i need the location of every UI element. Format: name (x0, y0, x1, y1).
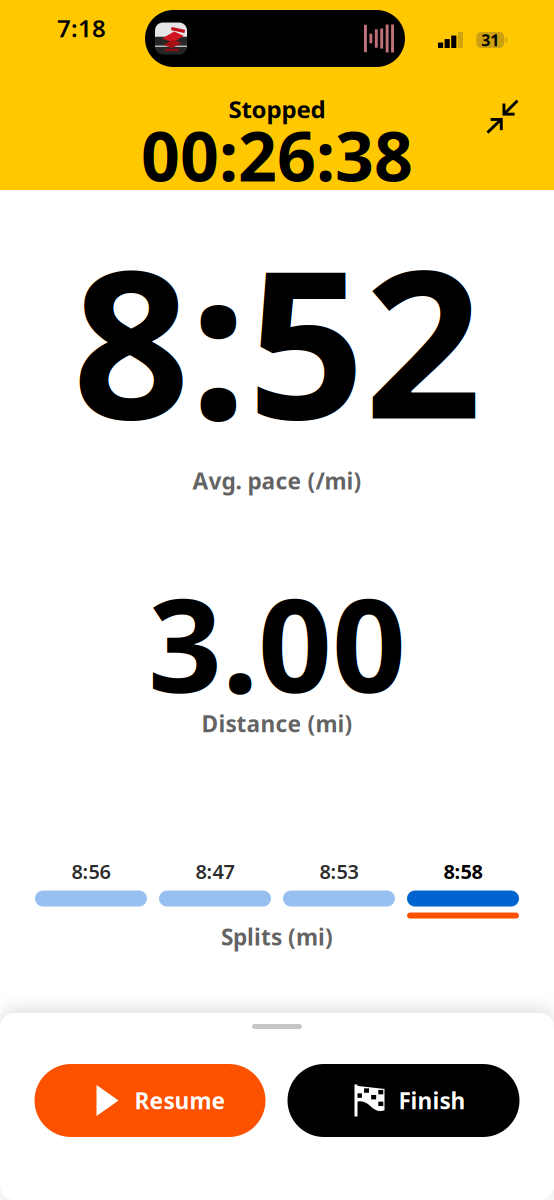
staticText: Finish (398, 1085, 465, 1115)
staticText: 00:26:38 (141, 110, 413, 200)
staticText: 31 (481, 29, 499, 51)
staticText: 8:56 (71, 858, 110, 885)
staticText: 3.00 (148, 557, 406, 728)
staticText: 8:47 (195, 858, 234, 885)
button[interactable]: Collapse (478, 92, 528, 142)
staticText: Distance (mi) (201, 708, 352, 739)
staticText: 7:18 (57, 12, 106, 44)
staticText: Avg. pace (/mi) (192, 466, 361, 496)
staticText: Resume (134, 1085, 225, 1115)
button[interactable]: Resume (34, 1064, 265, 1137)
staticText: 8:58 (443, 858, 482, 885)
staticText: Splits (mi) (221, 922, 333, 952)
staticText: 8:52 (72, 203, 481, 476)
staticText: 8:53 (319, 858, 358, 885)
staticText: Stopped (228, 93, 325, 125)
button[interactable]: Finish (287, 1064, 519, 1137)
